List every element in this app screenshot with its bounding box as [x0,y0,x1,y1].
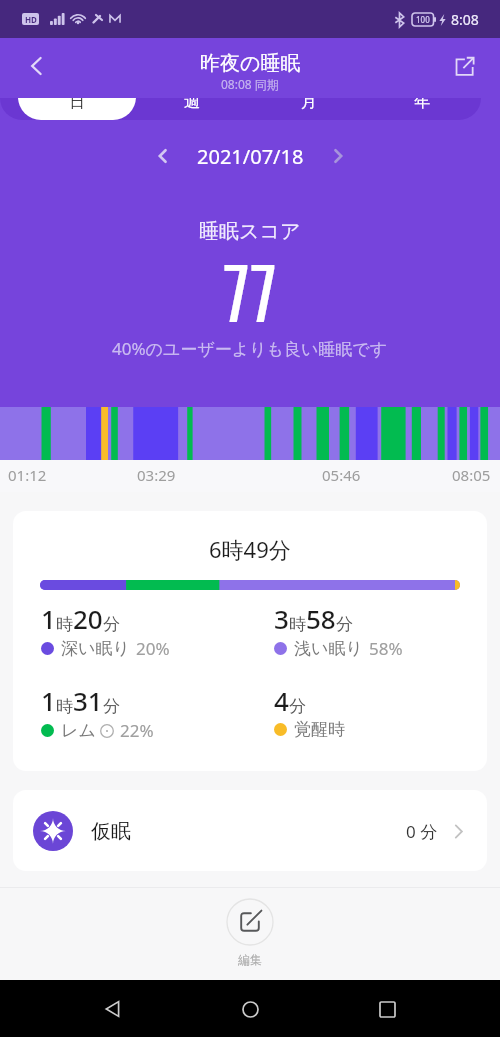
staticText: 20% [136,637,170,660]
button[interactable]: 週 [162,98,222,120]
staticText: 8:08 [451,10,479,29]
staticText: 時 [289,614,306,635]
staticText: 08:05 [452,465,491,485]
staticText: 浅い眠り [294,638,363,659]
staticText: 分 [336,614,353,635]
button[interactable]: Back [90,986,136,1032]
staticText: 編集 [238,952,262,967]
staticText: 4 [274,683,289,718]
staticText: 20 [73,601,103,636]
staticText: レム [61,720,96,741]
staticText: 日 [69,98,85,112]
button[interactable]: 年 [392,98,452,120]
staticText: 31 [73,683,103,718]
staticText: 22% [120,719,154,742]
staticText: 時 [56,614,73,635]
button[interactable]: 編集 [0,898,500,967]
staticText: 分 [103,696,120,717]
staticText: HD [25,14,37,25]
button[interactable]: Back [14,43,60,89]
staticText: 2021/07/18 [197,143,304,170]
staticText: 40%のユーザーよりも良い睡眠です [112,337,388,360]
staticText: 覚醒時 [294,719,345,740]
staticText: 0 分 [406,820,438,843]
button[interactable]: 月 [279,98,339,120]
staticText: 月 [301,98,317,112]
staticText: 100 [416,14,430,25]
staticText: 週 [184,98,200,112]
staticText: 仮眠 [91,819,131,844]
button[interactable]: Home [227,986,273,1032]
staticText: 年 [414,98,430,112]
staticText: 77 [223,238,278,342]
staticText: 03:29 [137,465,176,485]
button[interactable]: Previous day [141,138,185,174]
staticText: 時 [56,696,73,717]
button[interactable]: Next day [316,138,360,174]
button[interactable]: 日 [18,98,136,120]
staticText: 58 [306,601,336,636]
staticText: 01:12 [8,465,47,485]
staticText: 分 [103,614,120,635]
staticText: 3 [274,601,289,636]
button[interactable]: Recent apps [364,986,410,1032]
staticText: 05:46 [322,465,361,485]
button[interactable]: Share [442,44,486,88]
staticText: 6時49分 [209,534,291,564]
staticText: 1 [41,683,56,718]
staticText: 睡眠スコア [199,219,301,244]
button[interactable]: 仮眠 [13,790,487,871]
staticText: 分 [289,696,306,717]
staticText: 58% [369,637,403,660]
staticText: 昨夜の睡眠 [200,51,301,76]
staticText: 1 [41,601,56,636]
staticText: 深い眠り [61,638,130,659]
staticText: 08:08 同期 [221,76,279,92]
